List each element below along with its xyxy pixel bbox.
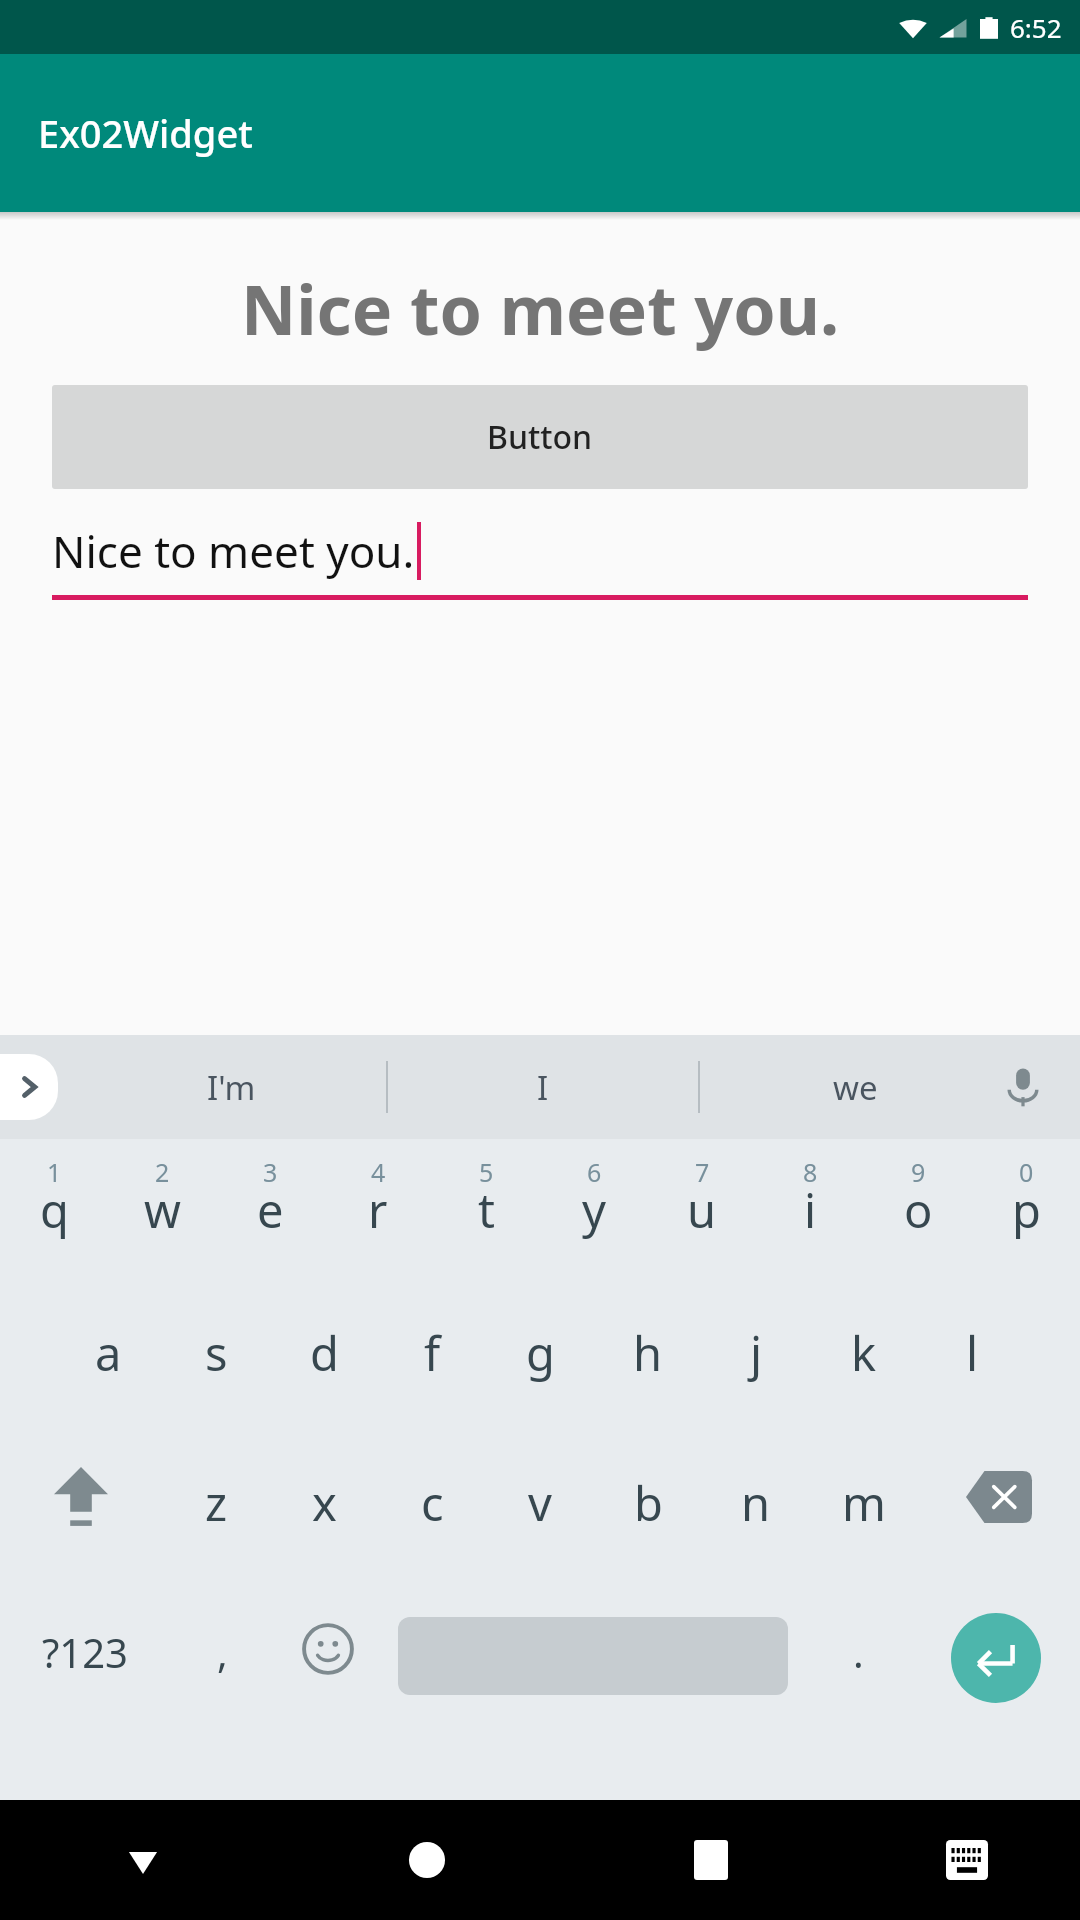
staticText: l: [966, 1321, 979, 1385]
staticText: 2: [155, 1155, 170, 1189]
button[interactable]: Recents: [569, 1800, 853, 1920]
staticText: o: [904, 1178, 933, 1242]
button[interactable]: 1: [0, 1145, 108, 1295]
button[interactable]: 3: [216, 1145, 324, 1295]
button[interactable]: j: [702, 1295, 810, 1445]
staticText: v: [528, 1471, 552, 1535]
button[interactable]: c: [378, 1445, 486, 1595]
button[interactable]: Backspace: [918, 1445, 1080, 1595]
button[interactable]: n: [702, 1445, 810, 1595]
button[interactable]: d: [270, 1295, 378, 1445]
staticText: h: [633, 1321, 663, 1385]
button[interactable]: b: [594, 1445, 702, 1595]
staticText: a: [95, 1321, 122, 1385]
button[interactable]: .: [805, 1595, 911, 1745]
button[interactable]: a: [54, 1295, 162, 1445]
staticText: Nice to meet you.: [0, 262, 1080, 355]
staticText: Nice to meet you.: [52, 521, 415, 581]
staticText: d: [310, 1321, 339, 1385]
staticText: z: [205, 1471, 228, 1535]
staticText: 6: [587, 1155, 602, 1189]
button[interactable]: f: [378, 1295, 486, 1445]
staticText: 6:52: [1010, 10, 1062, 45]
button[interactable]: 7: [648, 1145, 756, 1295]
staticText: 5: [479, 1155, 494, 1189]
button[interactable]: Emoji: [275, 1595, 381, 1745]
button[interactable]: k: [810, 1295, 918, 1445]
staticText: Ex02Widget: [38, 107, 253, 159]
staticText: r: [368, 1178, 388, 1242]
staticText: j: [750, 1321, 763, 1385]
button[interactable]: 9: [864, 1145, 972, 1295]
staticText: .: [853, 1625, 864, 1679]
staticText: w: [144, 1178, 181, 1242]
staticText: m: [842, 1471, 886, 1535]
staticText: k: [851, 1321, 877, 1385]
button[interactable]: g: [486, 1295, 594, 1445]
button[interactable]: Enter: [911, 1595, 1080, 1745]
staticText: f: [424, 1321, 441, 1385]
button[interactable]: I'm: [76, 1035, 386, 1139]
staticText: 8: [803, 1155, 818, 1189]
button[interactable]: x: [270, 1445, 378, 1595]
staticText: s: [205, 1321, 228, 1385]
staticText: 9: [911, 1155, 926, 1189]
staticText: we: [833, 1065, 878, 1110]
staticText: b: [634, 1471, 663, 1535]
button[interactable]: Space: [381, 1595, 805, 1745]
staticText: I'm: [207, 1065, 256, 1110]
staticText: 0: [1019, 1155, 1034, 1189]
button[interactable]: s: [162, 1295, 270, 1445]
staticText: y: [582, 1178, 606, 1242]
staticText: p: [1012, 1178, 1041, 1242]
staticText: 3: [263, 1155, 278, 1189]
staticText: 7: [695, 1155, 710, 1189]
button[interactable]: Switch keyboard: [853, 1800, 1080, 1920]
button[interactable]: Shift: [0, 1445, 162, 1595]
button[interactable]: 5: [432, 1145, 540, 1295]
button[interactable]: z: [162, 1445, 270, 1595]
button[interactable]: Back: [0, 1800, 285, 1920]
button[interactable]: Button: [52, 385, 1028, 489]
staticText: t: [478, 1178, 495, 1242]
button[interactable]: 4: [324, 1145, 432, 1295]
staticText: ,: [217, 1625, 228, 1679]
staticText: I: [537, 1065, 549, 1110]
button[interactable]: ,: [169, 1595, 275, 1745]
button[interactable]: 6: [540, 1145, 648, 1295]
button[interactable]: 2: [108, 1145, 216, 1295]
button[interactable]: ?123: [0, 1595, 169, 1745]
button[interactable]: l: [918, 1295, 1026, 1445]
staticText: 4: [371, 1155, 386, 1189]
button[interactable]: 0: [972, 1145, 1080, 1295]
button[interactable]: we: [700, 1035, 1010, 1139]
button[interactable]: h: [594, 1295, 702, 1445]
button[interactable]: I: [388, 1035, 698, 1139]
staticText: x: [312, 1471, 337, 1535]
staticText: c: [421, 1471, 444, 1535]
button[interactable]: Nice to meet you.: [52, 521, 1028, 600]
staticText: u: [687, 1178, 717, 1242]
button[interactable]: Home: [285, 1800, 569, 1920]
button[interactable]: v: [486, 1445, 594, 1595]
staticText: i: [804, 1178, 817, 1242]
staticText: g: [526, 1321, 555, 1385]
staticText: n: [741, 1471, 771, 1535]
staticText: ?123: [42, 1625, 128, 1679]
staticText: Button: [487, 415, 593, 459]
staticText: e: [257, 1178, 284, 1242]
button[interactable]: 8: [756, 1145, 864, 1295]
staticText: 1: [47, 1155, 62, 1189]
button[interactable]: Expand suggestions: [0, 1054, 58, 1120]
button[interactable]: m: [810, 1445, 918, 1595]
button[interactable]: Voice input: [986, 1050, 1060, 1124]
staticText: q: [40, 1178, 69, 1242]
